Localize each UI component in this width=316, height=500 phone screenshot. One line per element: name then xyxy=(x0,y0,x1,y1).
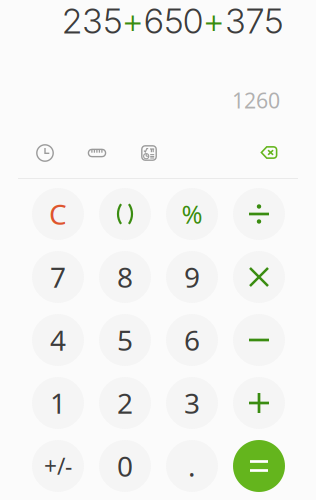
staticText: 2 xyxy=(117,384,133,422)
staticText: 5 xyxy=(117,321,133,359)
staticText: 0 xyxy=(117,447,133,485)
button[interactable]: Multiply xyxy=(233,251,285,303)
staticText: C xyxy=(49,195,67,233)
staticText: . xyxy=(188,447,196,485)
button[interactable]: Equals xyxy=(233,440,285,492)
button[interactable]: Delete xyxy=(250,135,290,171)
button[interactable]: 5 xyxy=(99,314,151,366)
staticText: 375 xyxy=(225,0,283,42)
staticText: 7 xyxy=(50,258,66,296)
button[interactable]: 4 xyxy=(32,314,84,366)
staticText: 3 xyxy=(184,384,200,422)
staticText: + xyxy=(203,0,225,42)
staticText: +/- xyxy=(44,451,72,481)
button[interactable]: C xyxy=(32,188,84,240)
button[interactable]: 6 xyxy=(166,314,218,366)
staticText: 1 xyxy=(50,384,66,422)
button[interactable]: 3 xyxy=(166,377,218,429)
staticText: 6 xyxy=(184,321,200,359)
staticText: 9 xyxy=(184,258,200,296)
button[interactable]: . xyxy=(166,440,218,492)
button[interactable]: Unit converter xyxy=(75,135,119,171)
button[interactable]: 1 xyxy=(32,377,84,429)
staticText: 1260 xyxy=(232,86,280,114)
button[interactable]: 9 xyxy=(166,251,218,303)
staticText: 650 xyxy=(144,0,203,42)
button[interactable]: 8 xyxy=(99,251,151,303)
button[interactable]: 7 xyxy=(32,251,84,303)
staticText: 4 xyxy=(50,321,66,359)
button[interactable]: +/- xyxy=(32,440,84,492)
staticText: 235 xyxy=(62,0,122,42)
staticText: + xyxy=(122,0,144,42)
button[interactable]: Divide xyxy=(233,188,285,240)
button[interactable]: % xyxy=(166,188,218,240)
staticText: % xyxy=(181,197,202,231)
button[interactable]: History xyxy=(23,135,67,171)
button[interactable]: Minus xyxy=(233,314,285,366)
staticText: 8 xyxy=(117,258,133,296)
button[interactable]: Plus xyxy=(233,377,285,429)
button[interactable]: Parentheses xyxy=(99,188,151,240)
button[interactable]: 0 xyxy=(99,440,151,492)
button[interactable]: 2 xyxy=(99,377,151,429)
button[interactable]: Scientific xyxy=(127,135,171,171)
